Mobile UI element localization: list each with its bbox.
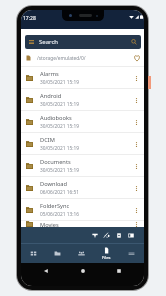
button[interactable]: Dual pane	[125, 227, 137, 243]
button[interactable]: More options	[129, 68, 144, 88]
button[interactable]: Movies	[21, 221, 144, 227]
button[interactable]: Documents	[21, 155, 144, 176]
button[interactable]: Files	[94, 244, 119, 263]
staticText: Search	[39, 38, 58, 46]
button[interactable]: FolderSync	[21, 199, 144, 220]
staticText: Alarms	[40, 70, 59, 78]
staticText: 30/05/2021 15:19	[40, 167, 80, 174]
staticText: 30/05/2021 15:19	[40, 123, 80, 130]
staticText: FolderSync	[40, 202, 70, 210]
button[interactable]: More options	[129, 221, 144, 227]
staticText: 30/05/2021 15:19	[40, 79, 80, 86]
button[interactable]: More options	[129, 200, 144, 220]
button[interactable]: Dashboard	[21, 244, 45, 263]
staticText: DCIM	[40, 136, 55, 144]
button[interactable]: More	[119, 244, 144, 263]
staticText: 05/06/2021 13:16	[40, 211, 80, 218]
other: Back	[43, 268, 49, 274]
button[interactable]: Audiobooks	[21, 111, 144, 132]
button[interactable]: /storage/emulated/0/	[21, 50, 144, 66]
staticText: Android	[40, 92, 62, 100]
button[interactable]: Folders	[45, 244, 69, 263]
button[interactable]: More options	[129, 156, 144, 176]
staticText: Download	[40, 180, 68, 188]
other: Home	[80, 268, 86, 274]
button[interactable]: Filter	[89, 227, 101, 243]
staticText: 06/06/2021 16:51	[40, 189, 80, 196]
button[interactable]: Select mode	[113, 227, 125, 243]
button[interactable]: DCIM	[21, 133, 144, 154]
button[interactable]: Search	[25, 35, 141, 49]
button[interactable]: More options	[129, 178, 144, 198]
button[interactable]: More options	[129, 112, 144, 132]
button[interactable]: Favorite	[130, 50, 144, 66]
button[interactable]: More options	[129, 134, 144, 154]
button[interactable]: Download	[21, 177, 144, 198]
staticText: Audiobooks	[40, 114, 72, 122]
staticText: /storage/emulated/0/	[37, 55, 86, 62]
other: Recent apps	[116, 268, 122, 274]
button[interactable]: Alarms	[21, 67, 144, 88]
button[interactable]: More options	[129, 90, 144, 110]
staticText: Movies	[40, 221, 59, 227]
staticText: Documents	[40, 158, 71, 166]
staticText: Files	[102, 255, 111, 260]
staticText: 30/05/2021 15:19	[40, 101, 80, 108]
button[interactable]: Show hidden files	[101, 227, 113, 243]
button[interactable]: Accounts	[69, 244, 94, 263]
button[interactable]: Android	[21, 89, 144, 110]
staticText: 30/05/2021 15:19	[40, 145, 80, 152]
staticText: 17:28	[23, 15, 36, 22]
